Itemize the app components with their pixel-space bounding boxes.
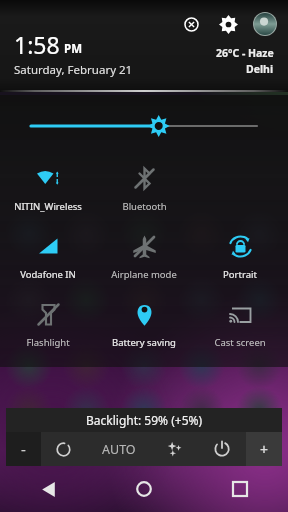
staticText: PM	[64, 41, 82, 57]
button[interactable]: Vodafone IN	[0, 229, 96, 283]
staticText: 26°C - Haze	[216, 46, 274, 60]
button[interactable]: Bluetooth	[96, 161, 192, 215]
staticText: Backlight: 59% (+5%)	[86, 412, 203, 428]
button[interactable]: User profile	[252, 11, 278, 37]
staticText: Vodafone IN	[20, 268, 76, 281]
button[interactable]: Do not disturb	[178, 11, 204, 37]
button[interactable]: Flashlight	[0, 297, 96, 351]
button[interactable]: Portrait	[192, 229, 288, 283]
button[interactable]: Cast screen	[192, 297, 288, 351]
button[interactable]: Power	[197, 432, 246, 466]
button[interactable]: Settings	[214, 10, 242, 38]
staticText: AUTO	[102, 441, 136, 458]
button[interactable]: Home	[96, 466, 192, 512]
button[interactable]: NITIN_Wireless	[0, 161, 96, 215]
staticText: Cast screen	[214, 336, 266, 349]
staticText: NITIN_Wireless	[14, 200, 82, 213]
staticText: Bluetooth	[122, 200, 167, 213]
button[interactable]: Brightness	[0, 113, 288, 139]
staticText: Portrait	[223, 268, 257, 281]
button[interactable]: Increase	[246, 432, 282, 466]
button[interactable]: Auto brightness	[85, 432, 152, 466]
staticText: Airplane mode	[111, 268, 177, 281]
staticText: Delhi	[246, 62, 274, 76]
staticText: 1:58	[14, 29, 60, 60]
button[interactable]: Recent apps	[192, 466, 288, 512]
staticText: -	[21, 439, 26, 459]
button[interactable]: Battery saving	[96, 297, 192, 351]
button[interactable]: Decrease	[6, 432, 41, 466]
staticText: Battery saving	[112, 336, 176, 349]
staticText: +	[260, 440, 269, 459]
staticText: Flashlight	[26, 336, 70, 349]
staticText: Saturday, February 21	[14, 62, 133, 78]
button[interactable]: Airplane mode	[96, 229, 192, 283]
button[interactable]: Back	[0, 466, 96, 512]
button[interactable]: Reset	[41, 432, 85, 466]
button[interactable]: Night mode	[152, 432, 197, 466]
